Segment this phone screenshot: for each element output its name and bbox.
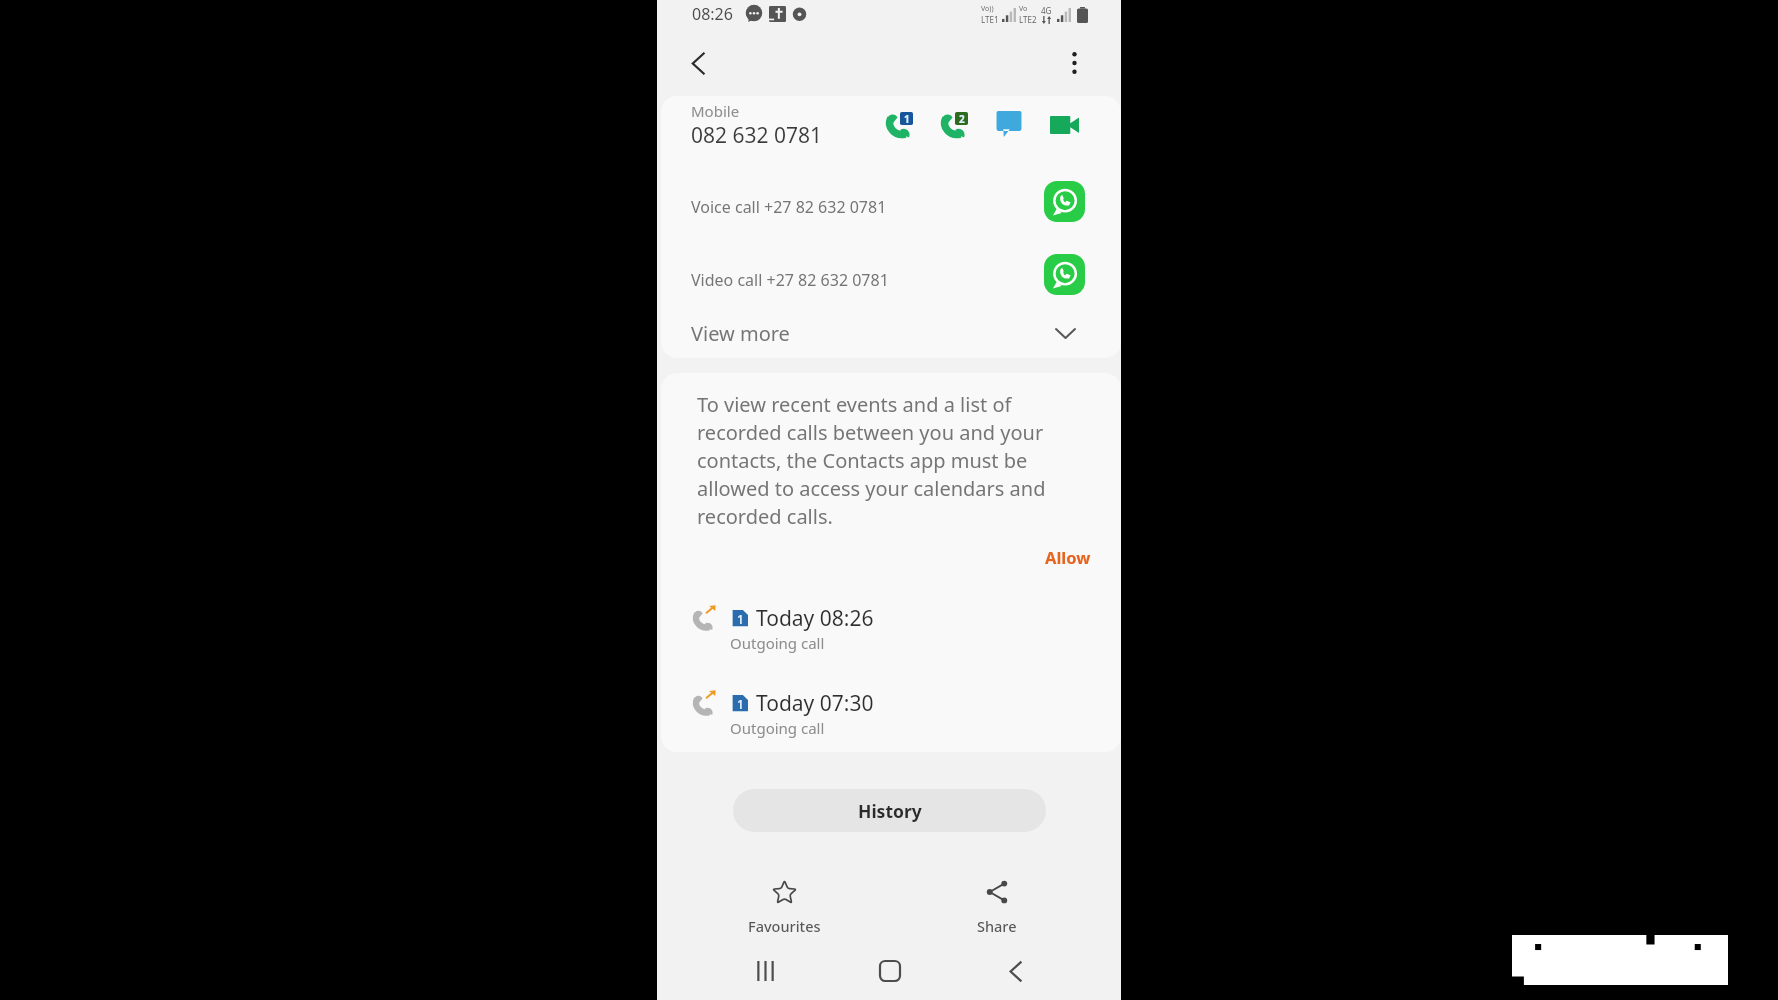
staticText: 1 bbox=[904, 112, 910, 125]
staticText: Favourites bbox=[748, 916, 821, 936]
button[interactable]: WhatsApp bbox=[1041, 178, 1087, 224]
staticText: Voice call +27 82 632 0781 bbox=[691, 196, 887, 218]
staticText: 08:26 bbox=[692, 3, 733, 25]
staticText: 1 bbox=[737, 611, 744, 627]
button[interactable]: Share bbox=[963, 875, 1031, 941]
button[interactable]: View more bbox=[661, 313, 1121, 353]
staticText: Vo bbox=[1019, 4, 1028, 14]
button[interactable]: Voice call +27 82 632 0781 bbox=[661, 170, 1121, 243]
button[interactable]: Back bbox=[675, 40, 721, 86]
staticText: Allow bbox=[1045, 546, 1091, 568]
staticText: 082 632 0781 bbox=[691, 121, 823, 150]
staticText: Mobile bbox=[691, 101, 740, 121]
button[interactable]: 1 bbox=[661, 689, 1121, 738]
staticText: Outgoing call bbox=[730, 718, 825, 738]
button[interactable]: Call with SIM 2 bbox=[933, 104, 975, 146]
button[interactable]: Video call bbox=[1043, 104, 1085, 146]
button[interactable]: More options bbox=[1051, 40, 1097, 86]
staticText: 4G bbox=[1041, 5, 1052, 16]
staticText: View more bbox=[691, 320, 790, 347]
button[interactable]: Call with SIM 1 bbox=[878, 104, 920, 146]
staticText: Today 07:30 bbox=[756, 689, 874, 718]
button[interactable]: Home bbox=[867, 948, 913, 994]
button[interactable]: Back bbox=[993, 948, 1039, 994]
staticText: 1 bbox=[737, 696, 744, 712]
staticText: LTE1 bbox=[981, 14, 999, 25]
staticText: Today 08:26 bbox=[756, 604, 874, 633]
staticText: 2 bbox=[959, 112, 965, 125]
staticText: Outgoing call bbox=[730, 633, 825, 653]
staticText: Vo)) bbox=[981, 4, 994, 14]
staticText: History bbox=[858, 799, 922, 823]
staticText: To view recent events and a list of reco… bbox=[697, 391, 1058, 530]
staticText: Share bbox=[977, 916, 1017, 936]
staticText: Video call +27 82 632 0781 bbox=[691, 269, 889, 291]
button[interactable]: WhatsApp bbox=[1041, 251, 1087, 297]
button[interactable]: Recents bbox=[742, 948, 788, 994]
button[interactable]: History bbox=[733, 789, 1046, 832]
button[interactable]: Message bbox=[988, 104, 1030, 146]
button[interactable]: Mobile bbox=[661, 96, 1121, 154]
staticText: LTE2 bbox=[1019, 14, 1037, 25]
button[interactable]: 1 bbox=[661, 604, 1121, 653]
button[interactable]: Video call +27 82 632 0781 bbox=[661, 243, 1121, 316]
button[interactable]: Allow bbox=[1027, 542, 1121, 572]
button[interactable]: Favourites bbox=[734, 875, 835, 941]
